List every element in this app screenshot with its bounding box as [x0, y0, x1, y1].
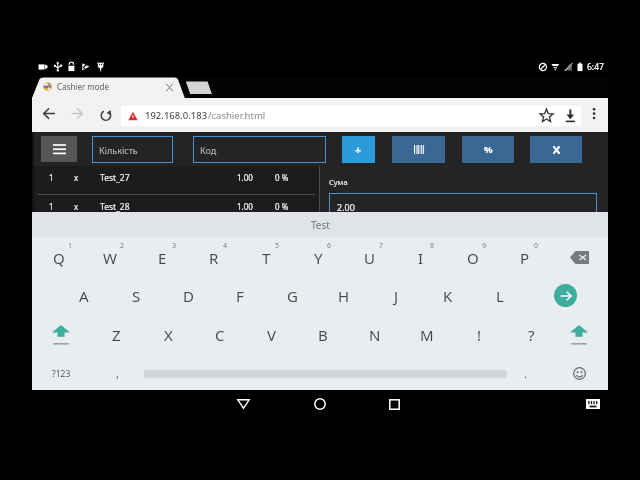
button[interactable]: S	[110, 277, 162, 314]
staticText: T	[262, 248, 271, 268]
button[interactable]: J	[370, 277, 422, 314]
staticText: %	[484, 143, 493, 156]
button[interactable]: K	[422, 277, 474, 314]
button[interactable]: Shift	[37, 316, 85, 354]
button[interactable]: Q	[33, 239, 85, 276]
staticText: 1	[49, 172, 54, 183]
button[interactable]: Discount	[462, 136, 514, 163]
button[interactable]: Код	[193, 136, 326, 163]
staticText: ?123	[52, 368, 71, 380]
button[interactable]: R	[188, 239, 240, 276]
button[interactable]: 192.168.0.183	[121, 106, 581, 126]
button[interactable]: X	[142, 316, 194, 353]
staticText: 5	[275, 241, 280, 251]
staticText: 2.00	[337, 201, 355, 213]
staticText: 4	[223, 241, 228, 251]
button[interactable]: Switch keyboard	[577, 390, 608, 418]
staticText: 8	[430, 241, 435, 251]
staticText: 9	[482, 241, 487, 251]
button[interactable]: H	[318, 277, 370, 314]
staticText: Y	[314, 248, 323, 268]
button[interactable]: I	[395, 239, 447, 276]
staticText: +	[355, 142, 362, 157]
button[interactable]: Menu	[41, 136, 77, 162]
staticText: G	[287, 286, 298, 306]
staticText: .	[524, 366, 527, 381]
button[interactable]: U	[343, 239, 395, 276]
staticText: 2	[120, 241, 125, 251]
staticText: V	[267, 325, 277, 345]
staticText: E	[158, 248, 167, 268]
button[interactable]: ?123	[37, 357, 85, 390]
staticText: W	[103, 248, 117, 268]
button[interactable]: !	[453, 316, 505, 353]
staticText: U	[364, 248, 375, 268]
staticText: Test_28	[100, 201, 130, 213]
button[interactable]: D	[162, 277, 214, 314]
staticText: X	[164, 325, 173, 345]
staticText: D	[183, 286, 194, 306]
button[interactable]: 1	[34, 195, 319, 217]
staticText: L	[496, 286, 504, 306]
button[interactable]: M	[401, 316, 453, 353]
staticText: S	[132, 286, 141, 306]
button[interactable]: L	[474, 277, 526, 314]
button[interactable]: V	[246, 316, 298, 353]
staticText: O	[467, 248, 479, 268]
button[interactable]: W	[84, 239, 136, 276]
button[interactable]: G	[266, 277, 318, 314]
staticText: /cashier.html	[208, 109, 266, 122]
button[interactable]: 2.00	[329, 193, 597, 219]
staticText: ?	[528, 325, 535, 345]
staticText: 6:47	[587, 61, 604, 73]
staticText: 7	[379, 241, 384, 251]
staticText: I	[418, 248, 424, 268]
staticText: 0 %	[275, 201, 289, 212]
button[interactable]: O	[447, 239, 499, 276]
staticText: C	[215, 325, 225, 345]
button[interactable]: C	[194, 316, 246, 353]
staticText: F	[236, 286, 244, 306]
button[interactable]: P	[499, 239, 551, 276]
button[interactable]: More options	[582, 98, 606, 132]
button[interactable]: Clear	[530, 136, 582, 163]
staticText: Q	[53, 248, 65, 268]
button[interactable]: Backspace	[554, 239, 604, 276]
button[interactable]: ?	[505, 316, 557, 353]
staticText: 0 %	[275, 172, 289, 183]
staticText: Кількість	[99, 144, 138, 156]
button[interactable]: Close tab	[165, 83, 174, 92]
staticText: 192.168.0.183	[145, 109, 208, 122]
staticText: Test	[311, 218, 330, 232]
button[interactable]: Add item	[342, 136, 375, 163]
button[interactable]: 1	[34, 166, 319, 188]
button[interactable]: .	[505, 357, 545, 390]
staticText: 1.00	[237, 172, 253, 183]
button[interactable]: Emoji	[555, 357, 603, 390]
staticText: Сума	[329, 177, 348, 187]
button[interactable]: Y	[292, 239, 344, 276]
button[interactable]: Scan barcode	[392, 136, 445, 163]
button[interactable]: A	[58, 277, 110, 314]
staticText: R	[209, 248, 219, 268]
button[interactable]: Back	[228, 390, 259, 418]
button[interactable]: N	[349, 316, 401, 353]
staticText: Test_27	[100, 172, 130, 184]
button[interactable]: ,	[97, 357, 137, 390]
staticText: x	[74, 172, 79, 183]
button[interactable]: Enter	[540, 277, 590, 314]
button[interactable]: F	[214, 277, 266, 314]
button[interactable]: T	[240, 239, 292, 276]
button[interactable]: Z	[90, 316, 142, 353]
button[interactable]: Shift	[555, 316, 603, 354]
staticText: B	[318, 325, 328, 345]
staticText: 1	[68, 241, 73, 251]
button[interactable]: E	[136, 239, 188, 276]
staticText: 1.00	[237, 201, 253, 212]
button[interactable]: B	[297, 316, 349, 353]
button[interactable]: Recent apps	[379, 390, 410, 418]
staticText: J	[394, 286, 399, 306]
button[interactable]: Кількість	[92, 136, 173, 163]
button[interactable]: Home	[304, 390, 335, 418]
